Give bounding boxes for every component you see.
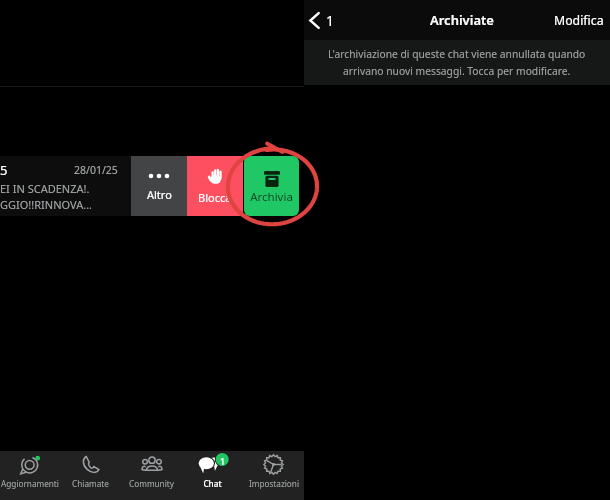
button[interactable]: Altro bbox=[131, 156, 187, 216]
button[interactable]: Indietro bbox=[304, 5, 343, 36]
staticText: Altro bbox=[147, 187, 172, 202]
staticText: 28/01/25 bbox=[74, 163, 118, 177]
button[interactable]: Modifica bbox=[546, 6, 610, 35]
staticText: Community bbox=[129, 478, 174, 489]
staticText: 5 bbox=[0, 161, 8, 179]
staticText: arrivano nuovi messaggi. Tocca per modif… bbox=[343, 64, 571, 78]
staticText: 1 bbox=[326, 11, 335, 30]
other: Community bbox=[141, 454, 163, 476]
button[interactable]: 1 bbox=[182, 451, 243, 500]
staticText: Chat bbox=[203, 478, 222, 489]
staticText: Chiamate bbox=[72, 478, 109, 489]
other: Aggiornamenti bbox=[20, 454, 41, 475]
button[interactable]: Aggiornamenti bbox=[0, 451, 60, 500]
staticText: L'archiviazione di queste chat viene ann… bbox=[328, 47, 586, 61]
button[interactable]: Blocca bbox=[187, 156, 243, 216]
button[interactable]: Impostazioni bbox=[243, 451, 304, 500]
staticText: 1 bbox=[220, 455, 226, 467]
staticText: EI IN SCADENZA!. bbox=[0, 181, 90, 196]
staticText: Impostazioni bbox=[249, 478, 299, 489]
button[interactable]: Community bbox=[121, 451, 182, 500]
button[interactable]: Chiamate bbox=[60, 451, 121, 500]
other: Chiamate bbox=[80, 454, 101, 475]
staticText: GGIO!!RINNOVA... bbox=[0, 197, 93, 212]
staticText: Archiviate bbox=[430, 11, 494, 29]
other: Impostazioni bbox=[263, 454, 284, 475]
other: Blocca bbox=[208, 168, 223, 184]
button[interactable]: Archivia bbox=[244, 156, 299, 216]
staticText: Modifica bbox=[554, 12, 604, 29]
other: Altro bbox=[147, 171, 171, 181]
staticText: Aggiornamenti bbox=[1, 478, 59, 489]
staticText: Archivia bbox=[244, 189, 299, 205]
staticText: Blocca bbox=[198, 190, 232, 205]
button[interactable]: L'archiviazione di queste chat viene ann… bbox=[304, 40, 610, 85]
